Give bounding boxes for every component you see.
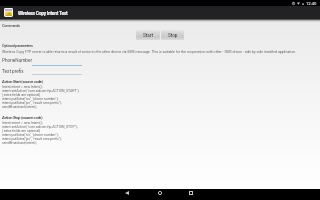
staticText: Optional parameters [2,43,33,47]
staticText: Action Stop (source code) [2,115,43,120]
staticText: Text prefix [2,69,24,75]
staticText: Commands [2,23,20,27]
staticText: Start [143,33,154,38]
button[interactable] [32,67,82,75]
staticText: [ extra fields are optional] [2,93,40,97]
staticText: Intent intent = new Intent(); [2,85,43,89]
staticText: Intent intent = new Intent(); [2,121,43,125]
button[interactable]: Home [154,187,165,198]
button[interactable]: App icon [4,8,13,17]
staticText: intent.putExtra("px", "result sms prefix… [2,137,62,141]
staticText: intent.setAction("com.adcom.ftp.ACTION_S… [2,125,78,129]
staticText: 12:40 [306,1,317,6]
staticText: Wireless Copy FTP server is able returns… [2,50,297,54]
staticText: sendBroadcast(intent); [2,105,37,109]
button[interactable]: Start [136,30,160,40]
staticText: intent.putExtra("px", "result sms prefix… [2,101,62,105]
button[interactable] [32,58,82,66]
staticText: intent.putExtra("no", "phone number"); [2,133,59,137]
staticText: [ extra fields are optional] [2,129,40,133]
button[interactable]: Recent apps [185,187,196,198]
staticText: intent.putExtra("no", "phone number"); [2,97,59,101]
staticText: Action Start (source code) [2,79,43,84]
staticText: PhoneNumber [2,58,33,64]
button[interactable]: Stop [161,30,184,40]
staticText: intent.setAction("com.adcom.ftp.ACTION_S… [2,89,80,93]
staticText: Wireless Copy Intent Test [18,11,68,17]
staticText: Stop [168,33,178,38]
button[interactable]: Back [121,187,132,198]
staticText: sendBroadcast(intent); [2,141,37,145]
